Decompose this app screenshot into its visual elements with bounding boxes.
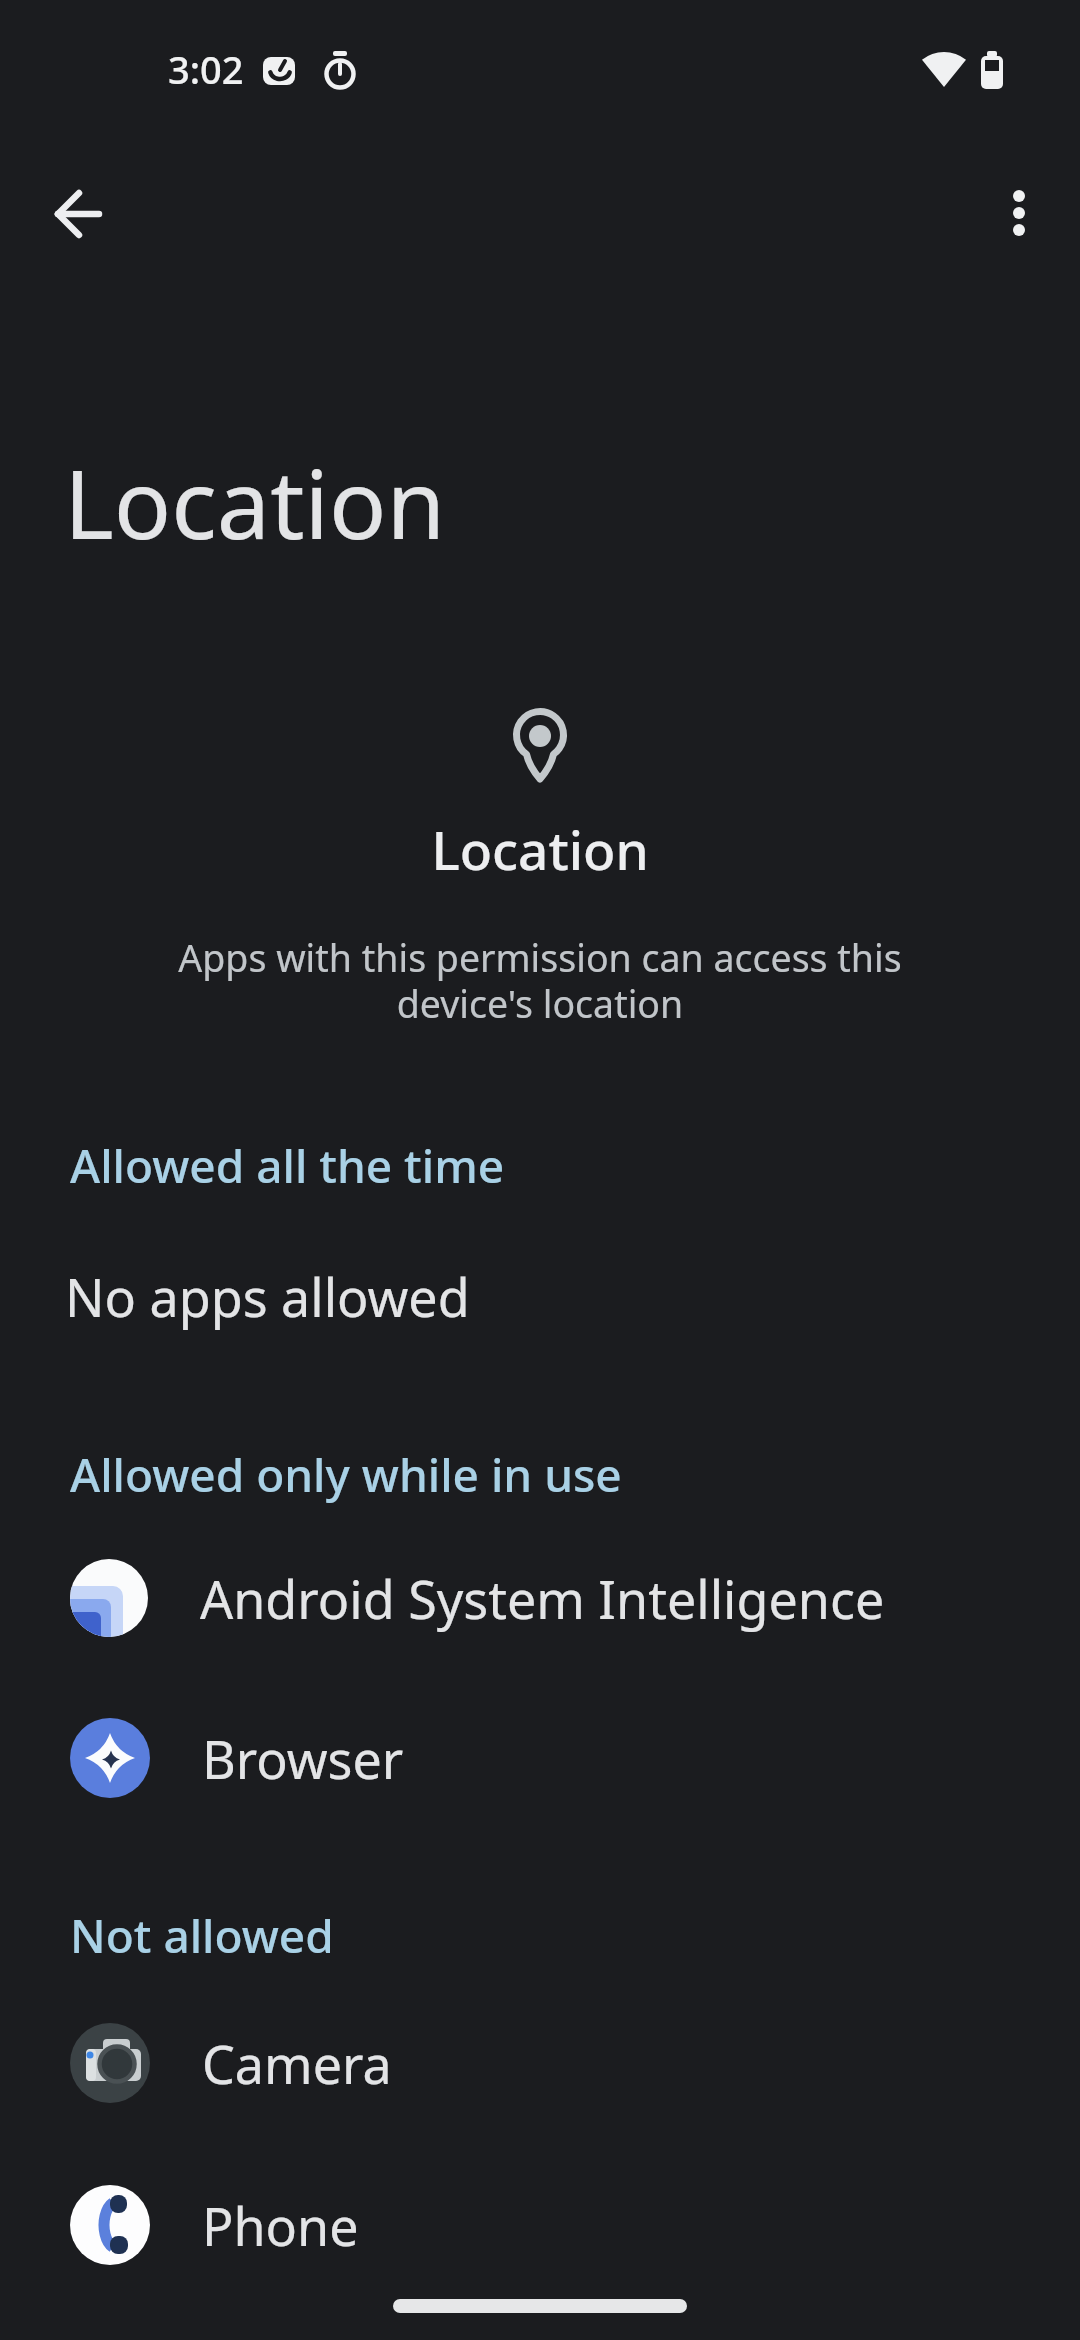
button[interactable]: Phone — [0, 2145, 1080, 2305]
staticText: 3:02 — [168, 43, 244, 95]
button[interactable] — [982, 176, 1056, 250]
staticText: Location — [64, 437, 446, 566]
button[interactable] — [41, 177, 115, 251]
staticText: Location — [0, 813, 1080, 885]
button[interactable]: Browser — [0, 1678, 1080, 1838]
staticText: Browser — [202, 1723, 404, 1794]
staticText: Android System Intelligence — [200, 1563, 885, 1634]
staticText: Not allowed — [70, 1904, 334, 1967]
button[interactable]: Android System Intelligence — [0, 1518, 1080, 1678]
staticText: Allowed only while in use — [70, 1443, 622, 1506]
staticText: No apps allowed — [65, 1261, 470, 1332]
staticText: Camera — [202, 2028, 392, 2099]
staticText: Apps with this permission can access thi… — [0, 932, 1080, 1029]
staticText: Phone — [202, 2190, 359, 2261]
button[interactable]: Camera — [0, 1983, 1080, 2143]
staticText: Allowed all the time — [70, 1134, 505, 1197]
